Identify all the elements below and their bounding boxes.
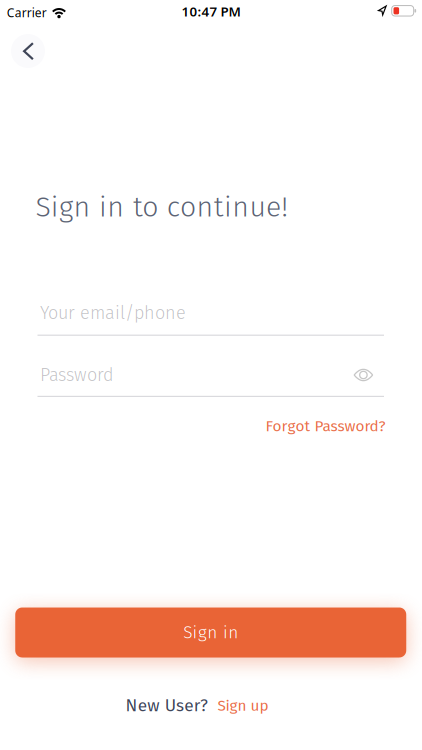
staticText: New User? [126,695,208,716]
staticText: 10:47 PM [181,2,240,20]
staticText: Your email/phone [40,302,186,324]
staticText: Carrier [7,5,47,21]
button[interactable]: Forgot Password? [265,417,385,435]
staticText: Forgot Password? [265,417,385,435]
staticText: Sign up [217,696,268,715]
button[interactable]: Show password [345,357,381,393]
button[interactable]: Sign in [15,607,406,657]
button[interactable]: Back [6,29,50,73]
button[interactable]: Sign up [217,696,268,715]
staticText: Password [40,364,114,386]
staticText: Sign in to continue! [35,190,288,224]
staticText: Sign in [183,622,238,643]
